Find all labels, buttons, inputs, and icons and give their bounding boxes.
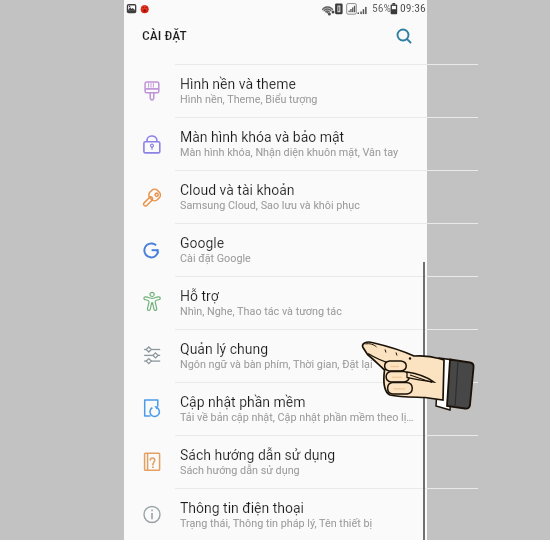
staticText: Nhìn, Nghe, Thao tác và tương tác — [180, 305, 342, 318]
button[interactable]: Hình nền và theme — [124, 65, 427, 117]
staticText: Cài đặt Google — [180, 252, 251, 265]
staticText: Hình nền, Theme, Biểu tượng — [180, 93, 318, 106]
staticText: Ngôn ngữ và bàn phím, Thời gian, Đặt lại — [180, 358, 373, 371]
staticText: Thông tin điện thoại — [180, 500, 304, 516]
staticText: Tải về bản cập nhật, Cập nhật phần mềm t… — [180, 411, 414, 424]
staticText: Hỗ trợ — [180, 288, 219, 304]
staticText: Màn hình khóa, Nhận diện khuôn mặt, Vân … — [180, 146, 399, 159]
button[interactable]: Cloud và tài khoản — [124, 171, 427, 223]
staticText: Màn hình khóa và bảo mật — [180, 129, 345, 145]
staticText: Sách hướng dẫn sử dụng — [180, 447, 336, 463]
button[interactable]: Sách hướng dẫn sử dụng — [124, 436, 427, 488]
staticText: Trạng thái, Thông tin pháp lý, Tên thiết… — [180, 517, 373, 530]
button[interactable]: Quản lý chung — [124, 330, 427, 382]
staticText: Sách hướng dẫn sử dụng — [180, 464, 300, 477]
button[interactable]: Search — [390, 22, 422, 54]
staticText: CÀI ĐẶT — [142, 27, 187, 43]
staticText: Google — [180, 235, 225, 251]
staticText: Samsung Cloud, Sao lưu và khôi phục — [180, 199, 360, 212]
staticText: Cập nhật phần mềm — [180, 394, 306, 410]
staticText: Quản lý chung — [180, 341, 269, 357]
staticText: Hình nền và theme — [180, 76, 296, 92]
button[interactable]: Hỗ trợ — [124, 277, 427, 329]
button[interactable]: Thông tin điện thoại — [124, 489, 427, 540]
staticText: 56% — [372, 1, 391, 15]
button[interactable]: Màn hình khóa và bảo mật — [124, 118, 427, 170]
staticText: 09:36 — [400, 1, 426, 15]
button[interactable]: Google — [124, 224, 427, 276]
button[interactable]: Cập nhật phần mềm — [124, 383, 427, 435]
staticText: Cloud và tài khoản — [180, 182, 295, 198]
